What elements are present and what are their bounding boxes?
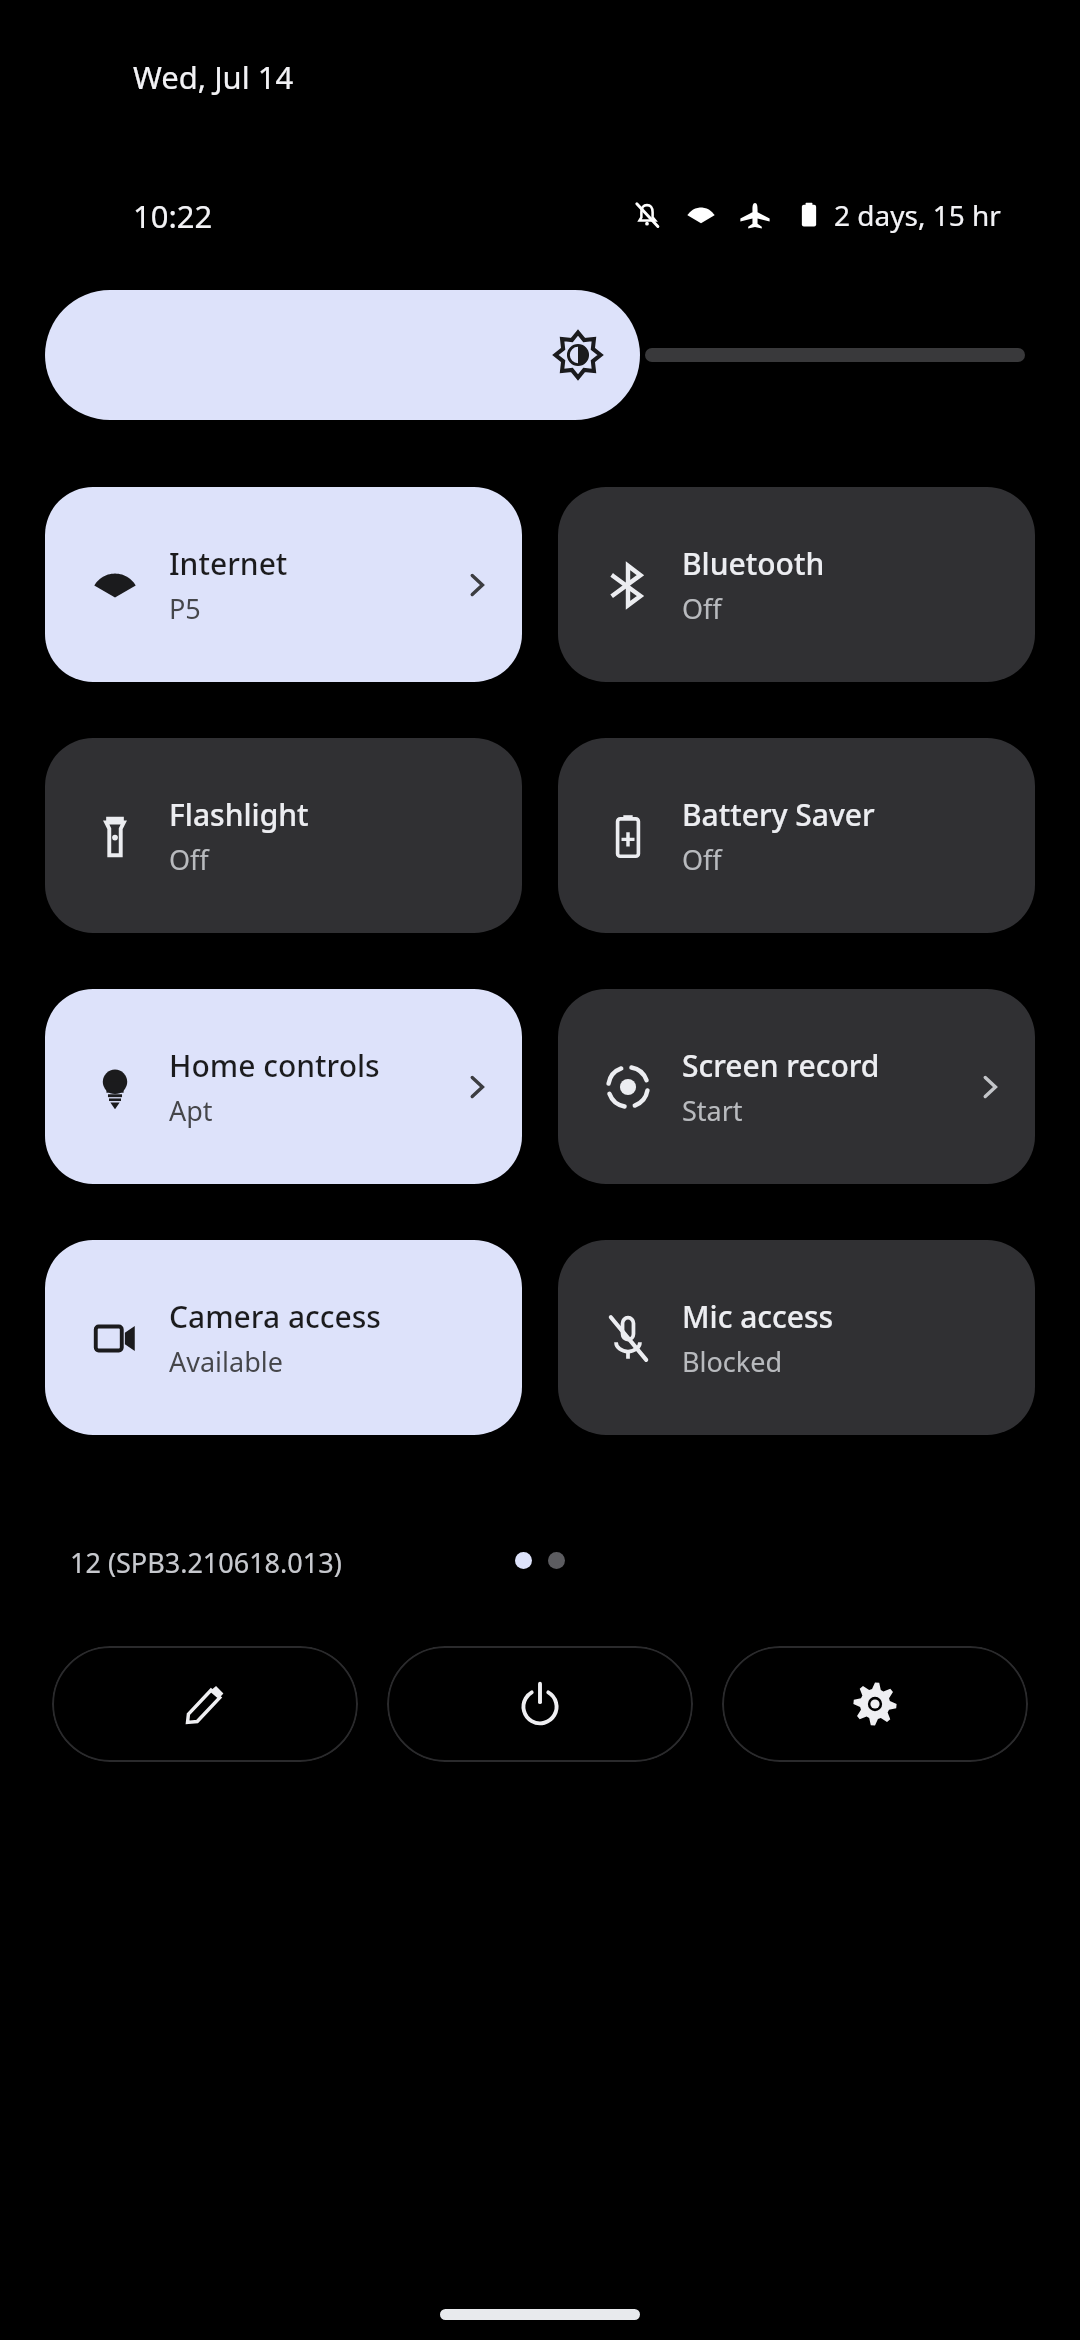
- staticText: Camera access: [169, 1296, 381, 1337]
- staticText: Off: [682, 590, 722, 627]
- staticText: 10:22: [133, 195, 213, 237]
- button[interactable]: Settings: [722, 1646, 1028, 1762]
- staticText: Blocked: [682, 1343, 783, 1380]
- staticText: Off: [682, 841, 722, 878]
- staticText: Apt: [169, 1092, 213, 1129]
- staticText: Home controls: [169, 1045, 380, 1086]
- button[interactable]: Bluetooth: [558, 487, 1035, 682]
- button[interactable]: Screen record: [558, 989, 1035, 1184]
- button[interactable]: Mic access: [558, 1240, 1035, 1435]
- staticText: P5: [169, 590, 201, 627]
- staticText: Screen record: [682, 1045, 880, 1086]
- button[interactable]: Battery Saver: [558, 738, 1035, 933]
- staticText: 2 days, 15 hr: [834, 196, 1001, 234]
- button[interactable]: [45, 290, 1035, 420]
- staticText: Flashlight: [169, 794, 309, 835]
- button[interactable]: Camera access: [45, 1240, 522, 1435]
- staticText: Available: [169, 1343, 283, 1380]
- button[interactable]: Internet: [45, 487, 522, 682]
- staticText: Start: [682, 1092, 743, 1129]
- staticText: Bluetooth: [682, 543, 825, 584]
- staticText: Off: [169, 841, 209, 878]
- staticText: 12 (SPB3.210618.013): [70, 1544, 342, 1581]
- staticText: Internet: [169, 543, 288, 584]
- staticText: Mic access: [682, 1296, 834, 1337]
- staticText: Wed, Jul 14: [133, 56, 294, 98]
- button[interactable]: Flashlight: [45, 738, 522, 933]
- button[interactable]: Home controls: [45, 989, 522, 1184]
- staticText: Battery Saver: [682, 794, 875, 835]
- button[interactable]: Power: [387, 1646, 693, 1762]
- button[interactable]: Edit tiles: [52, 1646, 358, 1762]
